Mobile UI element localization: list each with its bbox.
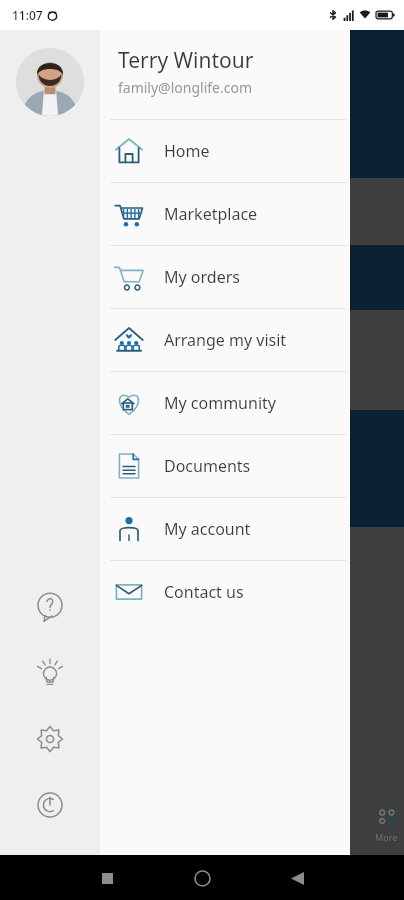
button[interactable]: Back <box>282 863 312 893</box>
button[interactable]: Contact us <box>100 561 350 623</box>
button[interactable]: More <box>375 806 398 843</box>
button[interactable]: Tips <box>28 651 72 695</box>
button[interactable]: Power off <box>28 783 72 827</box>
button[interactable]: Marketplace <box>100 183 350 245</box>
staticText: My community <box>164 392 276 414</box>
staticText: Marketplace <box>164 203 258 225</box>
button[interactable]: My community <box>100 372 350 434</box>
staticText: More <box>375 831 398 843</box>
button[interactable]: Arrange my visit <box>100 309 350 371</box>
staticText: 11:07 <box>12 7 43 23</box>
button[interactable]: Recents <box>92 863 122 893</box>
staticText: Arrange my visit <box>164 329 287 351</box>
staticText: Terry Wintour <box>118 46 254 75</box>
button[interactable]: Help <box>28 585 72 629</box>
staticText: My orders <box>164 266 240 288</box>
staticText: Contact us <box>164 581 244 603</box>
staticText: Documents <box>164 455 251 477</box>
staticText: FE <box>198 266 217 289</box>
button[interactable]: Documents <box>100 435 350 497</box>
button[interactable]: Home <box>100 120 350 182</box>
staticText: My account <box>164 518 251 540</box>
button[interactable]: Settings <box>28 717 72 761</box>
staticText: Home <box>164 140 210 162</box>
button[interactable]: Home <box>185 861 219 895</box>
staticText: family@longlife.com <box>118 78 253 97</box>
staticText: KS <box>197 457 218 480</box>
button[interactable]: Profile photo <box>16 48 84 116</box>
button[interactable]: My orders <box>100 246 350 308</box>
button[interactable]: My account <box>100 498 350 560</box>
